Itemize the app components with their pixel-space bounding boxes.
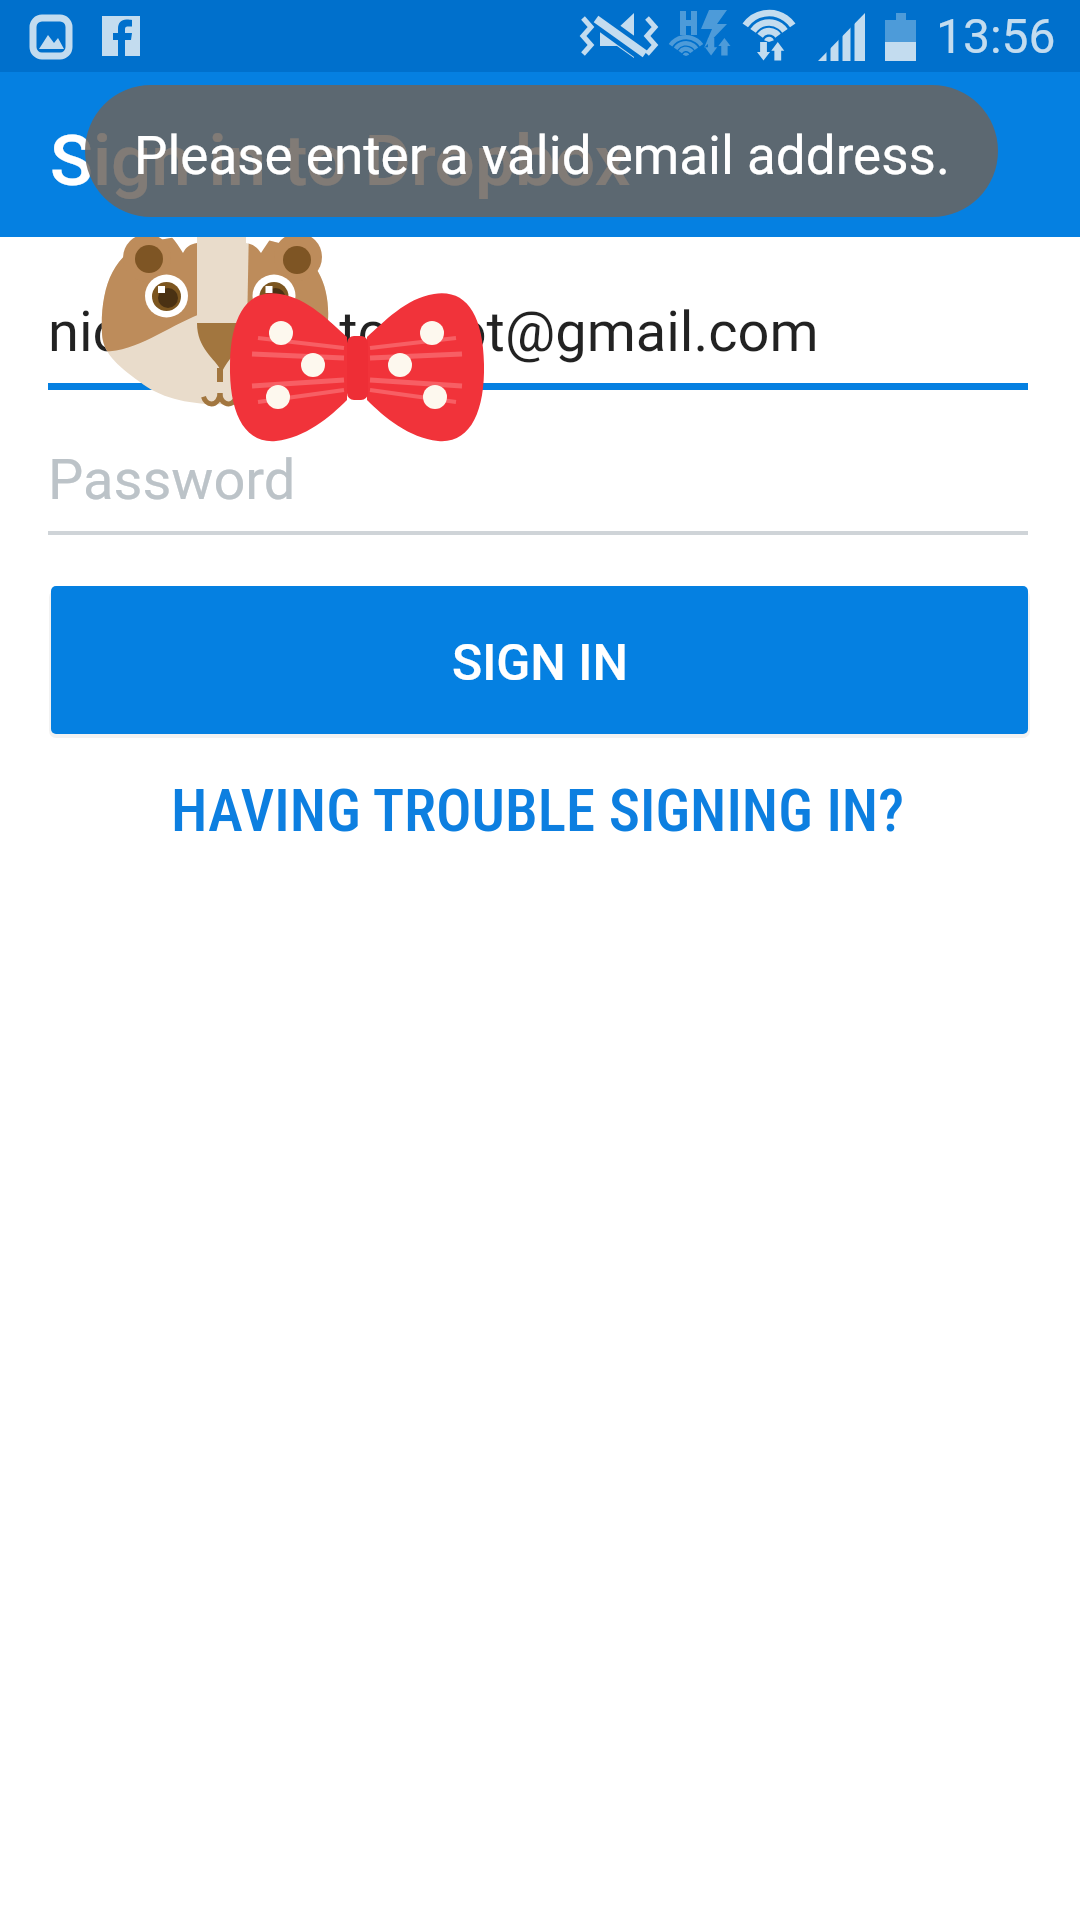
staticText: Sign in to Dropbox xyxy=(50,119,631,202)
staticText: nickthegreatcarrot@gmail.com xyxy=(48,299,819,365)
staticText: SIGN IN xyxy=(452,634,628,693)
other: Status icons xyxy=(0,0,1080,72)
button[interactable]: Password xyxy=(48,423,1028,535)
button[interactable]: nickthegreatcarrot@gmail.com xyxy=(48,275,1028,390)
button[interactable]: SIGN IN xyxy=(51,586,1028,734)
staticText: Please enter a valid email address. xyxy=(134,125,950,187)
staticText: HAVING TROUBLE SIGNING IN? xyxy=(171,776,905,845)
staticText: Password xyxy=(48,447,296,513)
button[interactable]: HAVING TROUBLE SIGNING IN? xyxy=(138,762,938,858)
staticText: 13:56 xyxy=(936,8,1056,64)
